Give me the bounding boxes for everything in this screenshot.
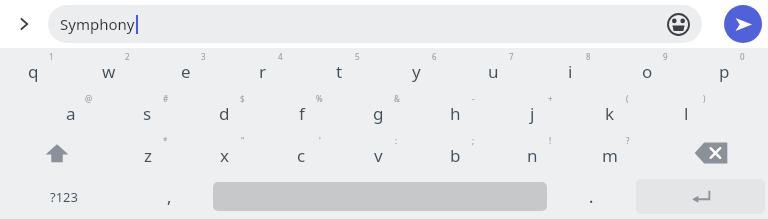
staticText: ?123 <box>50 188 78 206</box>
button[interactable]: Backspace <box>653 132 768 174</box>
staticText: ) <box>703 93 706 104</box>
staticText: x <box>220 144 229 167</box>
staticText: w <box>102 60 116 83</box>
staticText: v <box>374 144 383 167</box>
staticText: ; <box>472 135 475 146</box>
staticText: " <box>241 135 245 146</box>
staticText: 4 <box>278 51 283 62</box>
staticText: ' <box>319 135 321 146</box>
staticText: g <box>373 102 384 125</box>
button[interactable]: f <box>268 90 345 132</box>
button[interactable]: h <box>422 90 499 132</box>
staticText: $ <box>240 93 245 104</box>
staticText: ? <box>626 135 630 146</box>
button[interactable]: ?123 <box>0 174 127 219</box>
button[interactable]: i <box>537 48 614 90</box>
button[interactable]: k <box>576 90 653 132</box>
staticText: ! <box>549 135 552 146</box>
staticText: 6 <box>432 51 437 62</box>
staticText: q <box>28 60 39 83</box>
staticText: # <box>163 93 169 104</box>
button[interactable]: c <box>268 132 345 174</box>
staticText: - <box>472 93 475 104</box>
button[interactable]: Expand toolbar <box>6 6 42 42</box>
button[interactable]: p <box>691 48 768 90</box>
button[interactable]: Emoji <box>664 10 692 38</box>
staticText: % <box>316 93 323 104</box>
button[interactable]: Symphony <box>48 5 702 43</box>
button[interactable]: m <box>576 132 653 174</box>
button[interactable]: Enter <box>636 179 765 214</box>
button[interactable]: x <box>191 132 268 174</box>
staticText: s <box>143 102 152 125</box>
staticText: j <box>530 102 535 125</box>
staticText: : <box>395 135 398 146</box>
staticText: 5 <box>355 51 360 62</box>
staticText: c <box>297 144 306 167</box>
button[interactable]: g <box>345 90 422 132</box>
button[interactable]: y <box>383 48 460 90</box>
button[interactable]: u <box>460 48 537 90</box>
staticText: . <box>589 186 594 208</box>
staticText: d <box>219 102 230 125</box>
staticText: m <box>602 144 618 167</box>
staticText: a <box>66 102 76 125</box>
staticText: k <box>605 102 615 125</box>
staticText: u <box>488 60 499 83</box>
button[interactable]: l <box>653 90 730 132</box>
staticText: z <box>144 144 152 167</box>
button[interactable]: Period <box>549 174 633 219</box>
staticText: & <box>394 93 400 104</box>
staticText: 8 <box>586 51 591 62</box>
button[interactable]: Comma <box>127 174 211 219</box>
staticText: 1 <box>49 51 54 62</box>
button[interactable]: v <box>345 132 422 174</box>
button[interactable]: t <box>306 48 383 90</box>
button[interactable]: q <box>0 48 76 90</box>
staticText: b <box>450 144 461 167</box>
button[interactable]: e <box>152 48 229 90</box>
staticText: f <box>299 102 305 125</box>
staticText: 7 <box>509 51 514 62</box>
staticText: p <box>719 60 730 83</box>
staticText: r <box>259 60 267 83</box>
staticText: t <box>336 60 343 83</box>
staticText: 9 <box>663 51 668 62</box>
staticText: h <box>450 102 461 125</box>
staticText: o <box>642 60 653 83</box>
button[interactable]: a <box>37 90 114 132</box>
staticText: + <box>548 93 553 104</box>
button[interactable]: d <box>191 90 268 132</box>
staticText: 0 <box>740 51 745 62</box>
button[interactable]: z <box>114 132 191 174</box>
staticText: @ <box>85 93 93 104</box>
button[interactable]: Shift <box>0 132 114 174</box>
button[interactable]: s <box>114 90 191 132</box>
staticText: n <box>527 144 538 167</box>
staticText: , <box>167 186 172 208</box>
staticText: Symphony <box>60 14 135 34</box>
staticText: i <box>568 60 573 83</box>
button[interactable]: o <box>614 48 691 90</box>
button[interactable]: Send <box>724 5 762 43</box>
staticText: 2 <box>125 51 130 62</box>
button[interactable]: w <box>76 48 152 90</box>
staticText: e <box>181 60 191 83</box>
staticText: y <box>412 60 421 83</box>
staticText: l <box>684 102 689 125</box>
staticText: * <box>163 135 168 146</box>
staticText: 3 <box>201 51 206 62</box>
button[interactable]: r <box>229 48 306 90</box>
button[interactable]: j <box>499 90 576 132</box>
button[interactable]: b <box>422 132 499 174</box>
staticText: ( <box>626 93 629 104</box>
button[interactable]: n <box>499 132 576 174</box>
